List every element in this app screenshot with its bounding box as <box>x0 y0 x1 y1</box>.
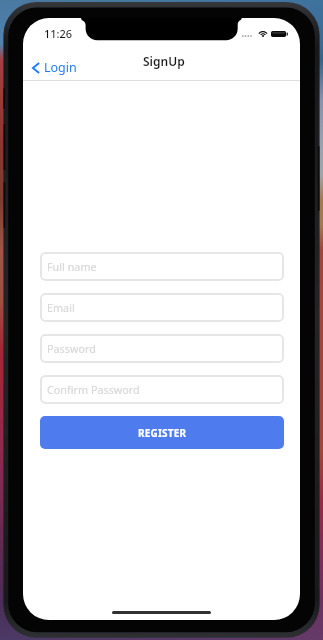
button[interactable]: Confirm Password <box>40 375 284 404</box>
staticText: Email <box>47 300 75 315</box>
staticText: SignUp <box>143 53 185 69</box>
staticText: 11:26 <box>44 26 73 41</box>
staticText: Password <box>47 341 96 356</box>
button[interactable]: Full name <box>40 252 284 281</box>
staticText: Login <box>44 59 77 76</box>
button[interactable]: Login <box>29 56 80 79</box>
button[interactable]: Email <box>40 293 284 322</box>
button[interactable]: REGISTER <box>40 416 284 449</box>
button[interactable]: Password <box>40 334 284 363</box>
staticText: Full name <box>47 259 97 274</box>
staticText: REGISTER <box>138 426 187 440</box>
staticText: Confirm Password <box>47 382 140 397</box>
